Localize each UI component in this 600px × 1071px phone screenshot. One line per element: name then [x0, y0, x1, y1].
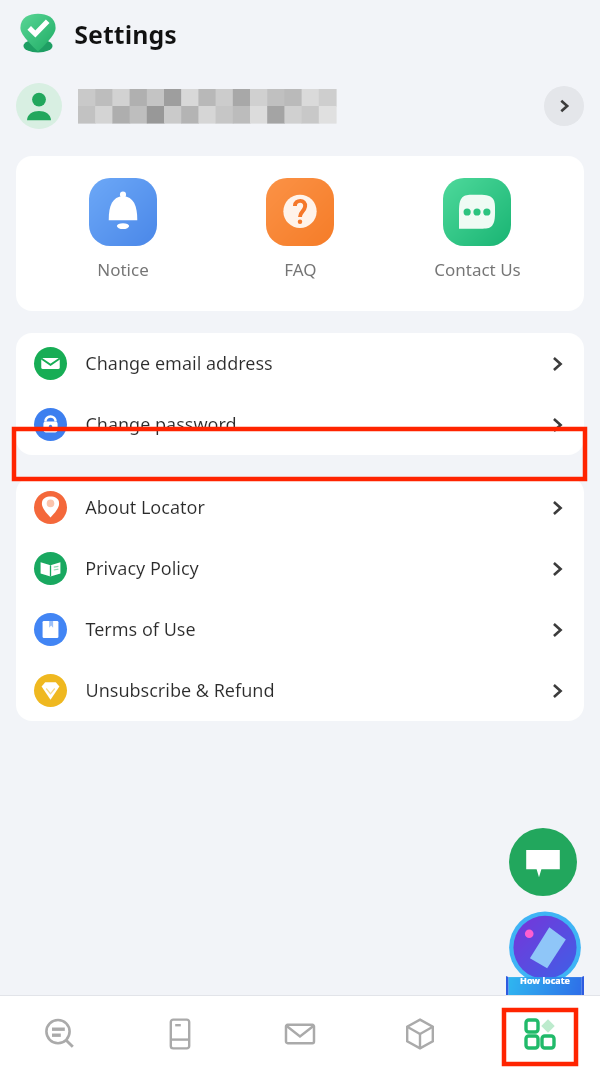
staticText: Contact Us	[434, 258, 521, 281]
staticText: FAQ	[284, 258, 317, 281]
button[interactable]: Chat support	[509, 828, 577, 896]
button[interactable]: Device	[120, 996, 240, 1071]
staticText: Change password	[85, 412, 237, 437]
button[interactable]: Apps	[480, 996, 600, 1071]
staticText: Settings	[74, 17, 177, 51]
button[interactable]: Contact Us	[407, 178, 547, 281]
staticText: Unsubscribe & Refund	[85, 678, 275, 703]
staticText: Terms of Use	[85, 617, 196, 642]
button[interactable]: Open profile	[0, 68, 600, 144]
button[interactable]: Unsubscribe & Refund	[16, 660, 584, 721]
button[interactable]: Privacy Policy	[16, 538, 584, 599]
button[interactable]: Open profile	[544, 86, 584, 126]
button[interactable]: Package	[360, 996, 480, 1071]
button[interactable]: Notice	[53, 178, 193, 281]
button[interactable]: About Locator	[16, 477, 584, 538]
button[interactable]: Search	[0, 996, 120, 1071]
staticText: Privacy Policy	[85, 556, 199, 581]
button[interactable]: Change email address	[16, 333, 584, 394]
staticText: About Locator	[85, 495, 205, 520]
button[interactable]: How locate	[506, 910, 584, 992]
staticText: Notice	[97, 258, 149, 281]
button[interactable]: Terms of Use	[16, 599, 584, 660]
staticText: How locate	[520, 974, 570, 986]
button[interactable]: FAQ	[230, 178, 370, 281]
button[interactable]: Messages	[240, 996, 360, 1071]
staticText: Change email address	[85, 351, 273, 376]
button[interactable]: Change password	[16, 394, 584, 455]
